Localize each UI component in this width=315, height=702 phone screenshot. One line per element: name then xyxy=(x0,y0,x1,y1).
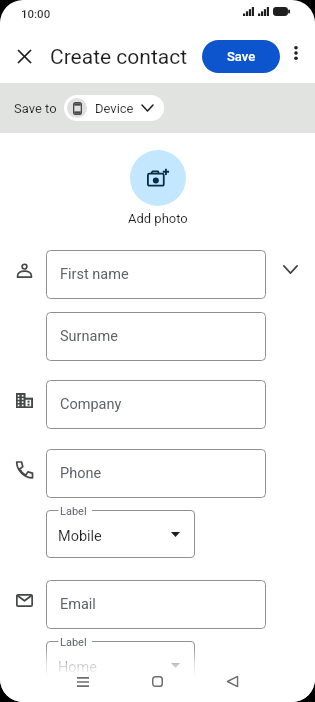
staticText: Home xyxy=(58,659,98,676)
button[interactable]: Close xyxy=(6,38,43,75)
staticText: Surname xyxy=(60,328,118,345)
button[interactable]: Label xyxy=(46,641,195,689)
staticText: Device xyxy=(95,101,134,116)
button[interactable]: Surname xyxy=(46,312,266,361)
staticText: Create contact xyxy=(50,45,188,70)
button[interactable]: Recent apps xyxy=(65,664,100,699)
staticText: Label xyxy=(60,636,87,649)
button[interactable]: Label xyxy=(46,510,195,558)
staticText: Save xyxy=(227,49,256,64)
staticText: Label xyxy=(60,505,87,518)
button[interactable]: Expand name fields xyxy=(275,254,306,285)
button[interactable]: Save xyxy=(202,40,280,73)
staticText: Mobile xyxy=(58,528,102,545)
button[interactable]: Add photo xyxy=(130,150,186,206)
staticText: 10:00 xyxy=(21,7,51,20)
button[interactable]: Back xyxy=(215,664,250,699)
staticText: Phone xyxy=(60,465,102,482)
staticText: Email xyxy=(60,596,96,613)
staticText: First name xyxy=(60,266,129,283)
button[interactable]: First name xyxy=(46,250,266,299)
staticText: Company xyxy=(60,396,122,413)
button[interactable]: More options xyxy=(283,40,309,66)
button[interactable]: Company xyxy=(46,380,266,429)
button[interactable]: Home xyxy=(140,664,175,699)
button[interactable]: Phone xyxy=(46,449,266,498)
button[interactable]: Device xyxy=(64,95,164,121)
staticText: Add photo xyxy=(128,211,188,226)
button[interactable]: Email xyxy=(46,580,266,629)
staticText: Save to xyxy=(14,101,57,116)
